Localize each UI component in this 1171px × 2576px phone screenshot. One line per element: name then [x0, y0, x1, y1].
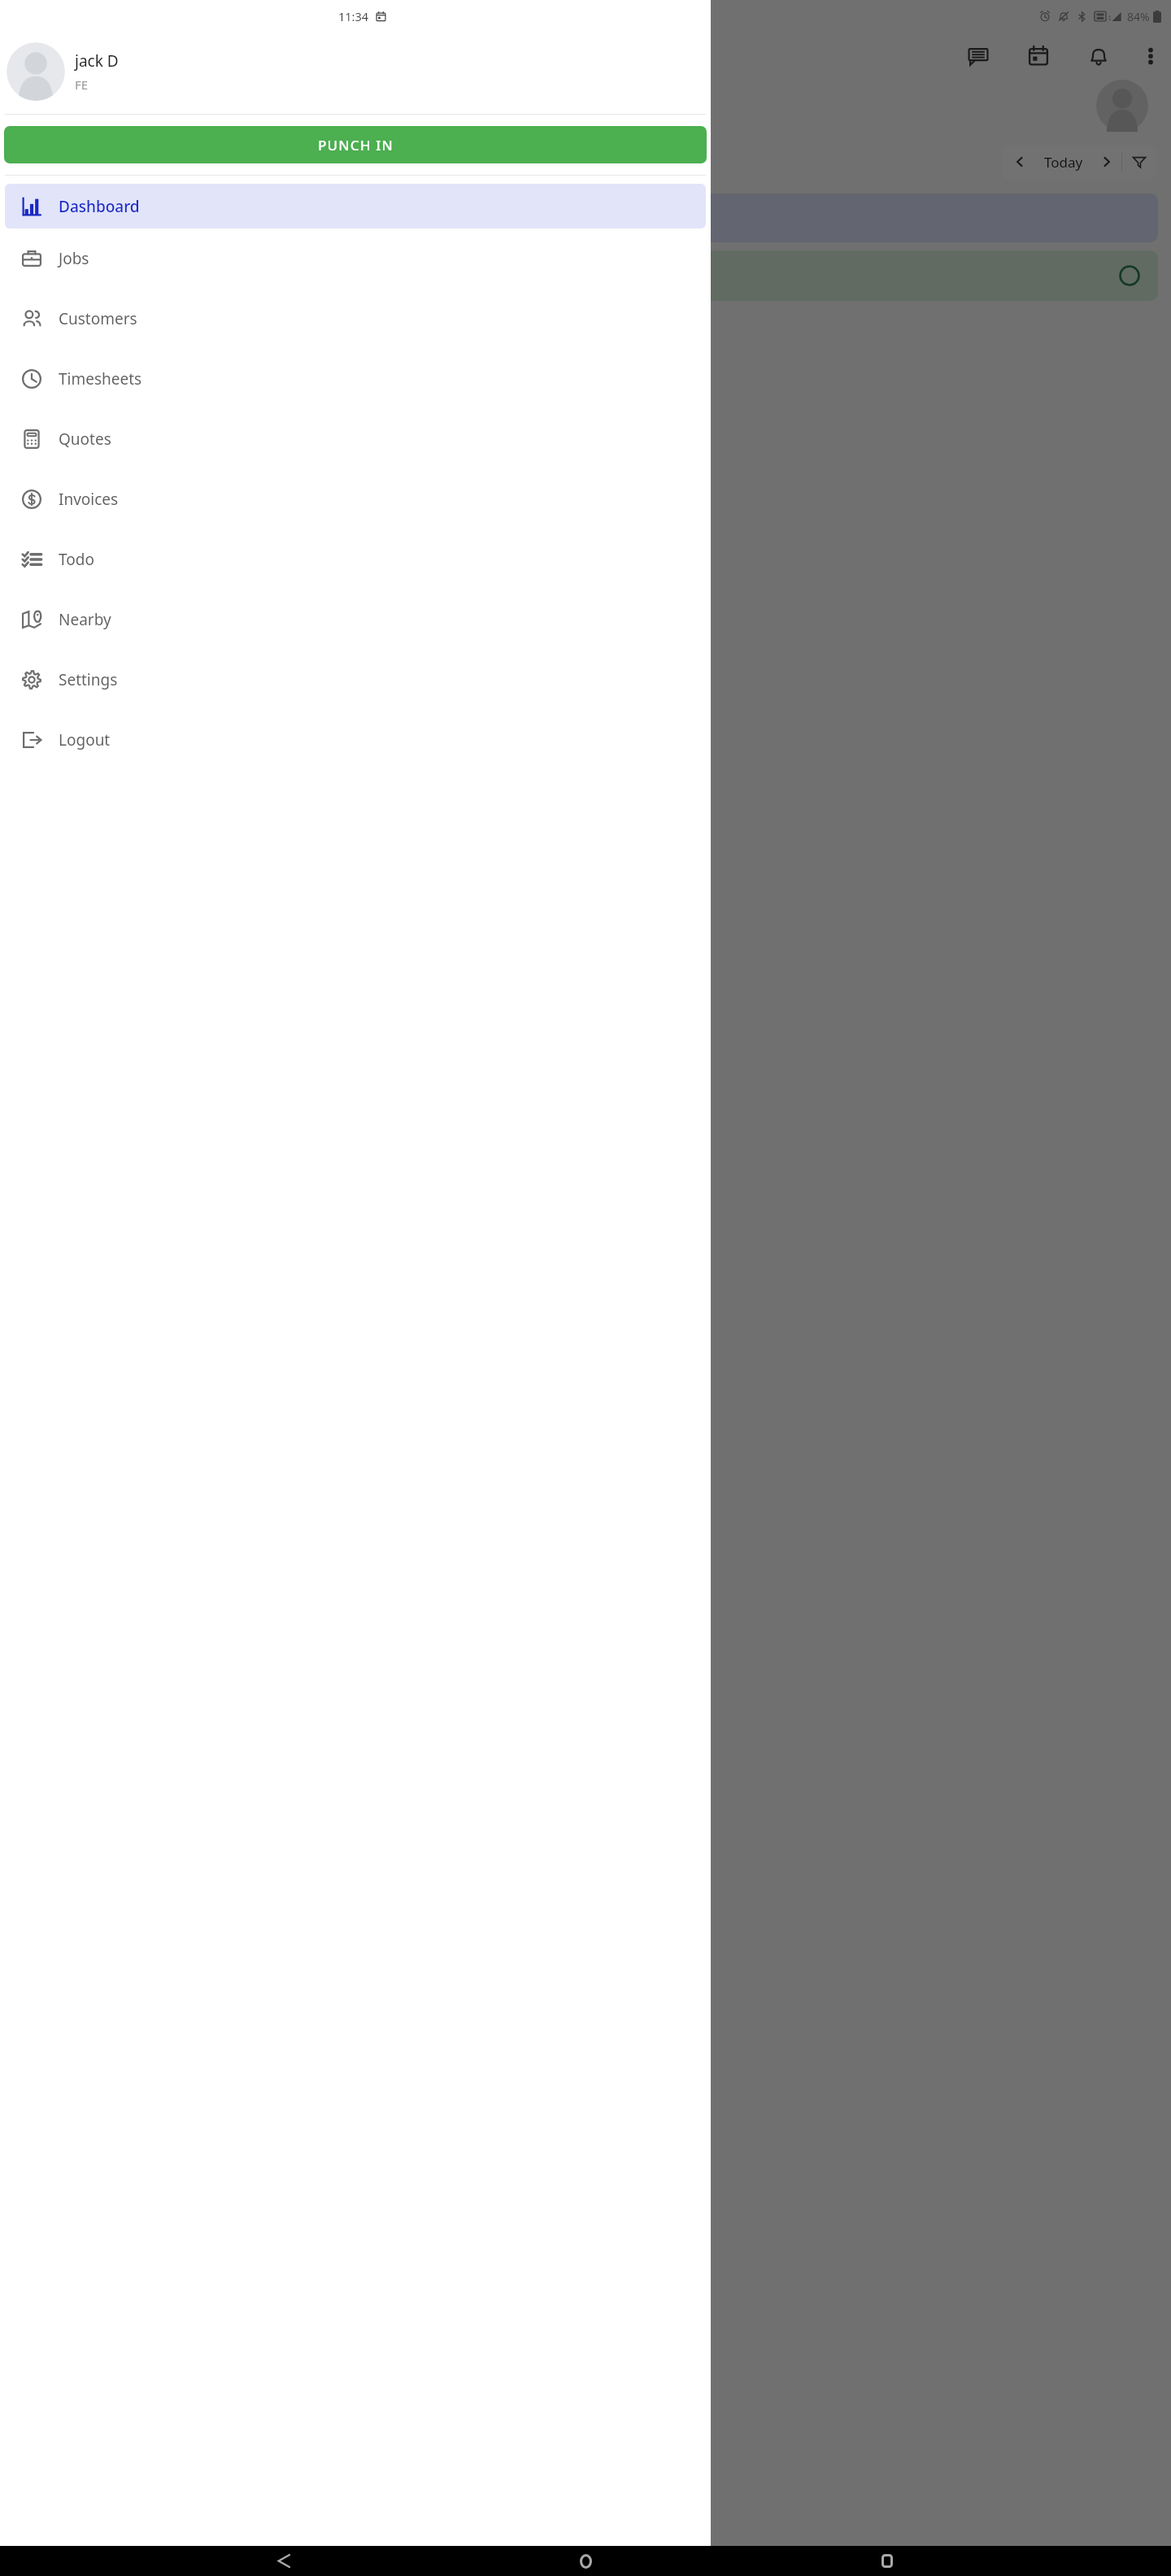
button[interactable]: Logout — [5, 710, 706, 770]
staticText: Nearby — [59, 609, 111, 630]
staticText: 84% — [1127, 9, 1150, 24]
button[interactable]: Notifications — [1088, 46, 1109, 67]
staticText: Jobs — [59, 248, 89, 269]
button[interactable]: Customers — [5, 289, 706, 349]
button[interactable]: Jobs — [5, 228, 706, 289]
staticText: PUNCH IN — [318, 136, 394, 154]
button[interactable]: Dashboard — [5, 184, 706, 228]
button[interactable]: Recent apps — [869, 2546, 905, 2576]
button[interactable]: To Start — [13, 194, 1158, 242]
button[interactable]: Todo — [5, 529, 706, 590]
staticText: 11:34 — [338, 8, 369, 24]
staticText: Completed — [28, 265, 107, 286]
button[interactable]: Quotes — [5, 409, 706, 469]
button[interactable]: Invoices — [5, 469, 706, 529]
button[interactable]: Messages — [968, 46, 989, 67]
staticText: jack D — [75, 50, 119, 72]
button[interactable]: Quotes — [10, 333, 96, 371]
button[interactable]: Settings — [5, 650, 706, 710]
button[interactable]: More options — [1142, 47, 1160, 65]
button[interactable]: Today — [1002, 145, 1156, 179]
staticText: Invoices — [59, 489, 119, 510]
button[interactable]: PUNCH IN — [4, 126, 707, 163]
button[interactable]: Timesheets — [5, 349, 706, 409]
staticText: Quotes — [59, 429, 111, 450]
button[interactable]: Home — [568, 2546, 603, 2576]
staticText: To Start — [28, 207, 84, 228]
staticText: FE — [75, 76, 89, 93]
staticText: Settings — [59, 669, 118, 690]
button[interactable]: Calendar — [1028, 46, 1049, 67]
staticText: Todo — [59, 549, 94, 570]
staticText: Timesheets — [59, 368, 142, 389]
button[interactable]: Completed — [13, 250, 1158, 301]
staticText: Customers — [59, 308, 137, 329]
staticText: Today — [1026, 153, 1100, 172]
staticText: Dashboard — [59, 196, 140, 217]
staticText: Logout — [59, 729, 111, 751]
staticText: No jobs for today — [13, 493, 139, 514]
button[interactable]: Nearby — [5, 590, 706, 650]
button[interactable]: Back — [266, 2546, 302, 2576]
